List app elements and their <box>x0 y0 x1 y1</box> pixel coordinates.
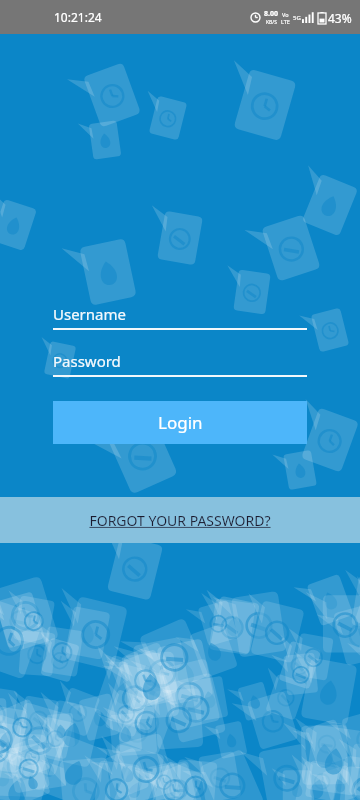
staticText: Password <box>53 351 121 371</box>
staticText: Vo <box>282 11 289 18</box>
staticText: 5G <box>293 14 301 22</box>
button[interactable]: FORGOT YOUR PASSWORD? <box>0 497 360 543</box>
button[interactable]: Password <box>53 345 307 377</box>
button[interactable]: Login <box>53 401 307 444</box>
staticText: 43% <box>328 10 352 26</box>
staticText: Login <box>158 411 203 434</box>
staticText: KB/S <box>266 19 277 26</box>
staticText: Username <box>53 304 126 324</box>
staticText: FORGOT YOUR PASSWORD? <box>89 511 271 530</box>
staticText: LTE <box>281 18 290 25</box>
staticText: 8.00 <box>264 9 278 19</box>
staticText: 10:21:24 <box>54 9 102 25</box>
button[interactable]: Username <box>53 298 307 330</box>
